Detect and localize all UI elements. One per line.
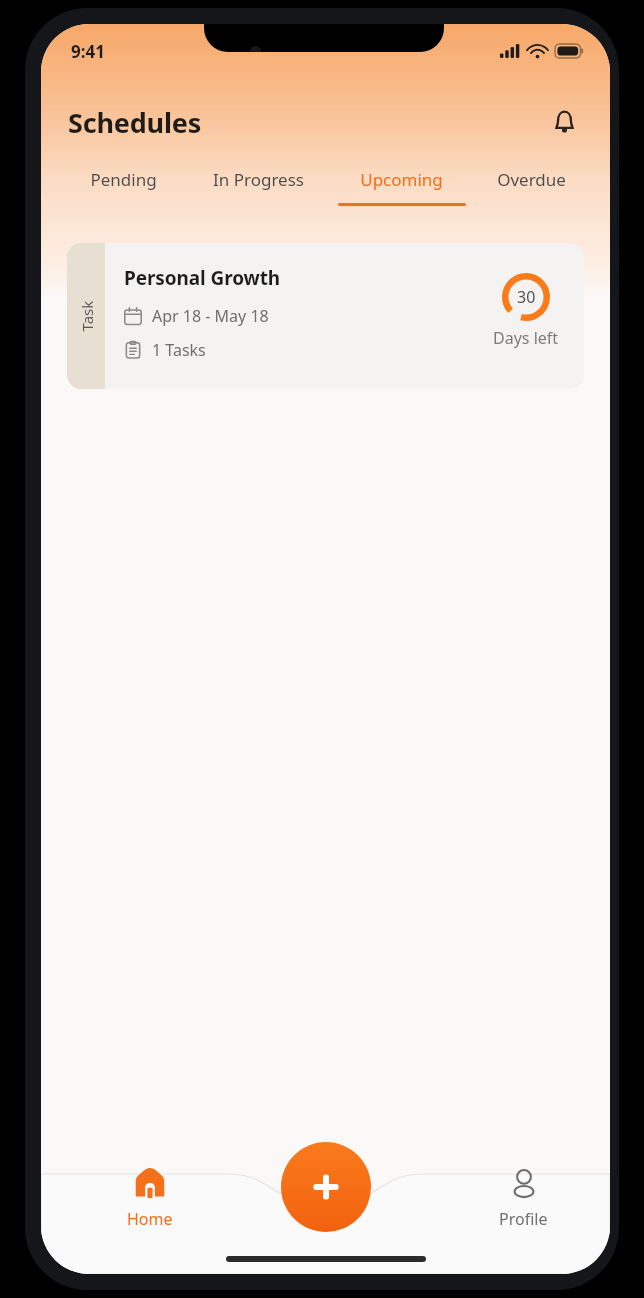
staticText: In Progress [213, 168, 304, 191]
staticText: Home [127, 1208, 173, 1230]
button[interactable]: Profile [499, 1168, 548, 1230]
staticText: Overdue [497, 168, 566, 191]
staticText: Upcoming [360, 168, 443, 191]
staticText: Profile [499, 1208, 548, 1230]
button[interactable]: Notifications [542, 100, 586, 144]
button[interactable]: Task [67, 243, 584, 389]
button[interactable]: Add [281, 1142, 371, 1232]
button[interactable]: Upcoming [333, 168, 470, 206]
staticText: Personal Growth [124, 265, 281, 291]
staticText: 1 Tasks [152, 339, 206, 361]
staticText: 9:41 [71, 40, 105, 63]
button[interactable]: Home [127, 1166, 173, 1230]
staticText: Task [76, 300, 96, 331]
button[interactable]: Pending [63, 168, 184, 203]
button[interactable]: In Progress [184, 168, 333, 203]
button[interactable]: Overdue [470, 168, 592, 203]
staticText: Schedules [68, 104, 202, 141]
staticText: Days left [493, 327, 559, 349]
staticText: 30 [517, 286, 536, 308]
staticText: Pending [90, 168, 157, 191]
staticText: Apr 18 - May 18 [152, 305, 269, 327]
